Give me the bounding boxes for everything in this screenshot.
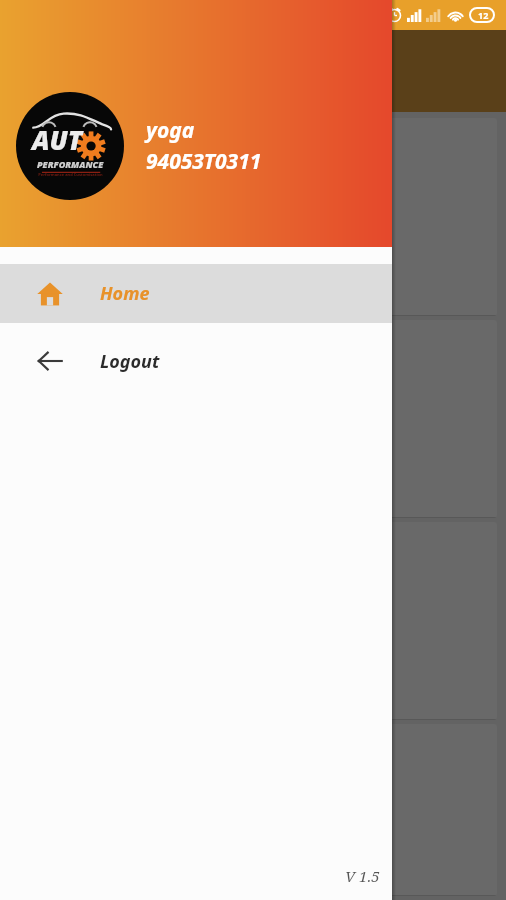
button[interactable]: JOBCARD [8, 320, 497, 518]
staticText: 94053T0311 [146, 147, 262, 176]
button[interactable]: Home [0, 264, 392, 323]
staticText: V 1.5 [345, 866, 380, 886]
button[interactable]: JOBCARD [8, 118, 497, 316]
staticText: Logout [100, 349, 160, 374]
button[interactable]: JOBCARD [8, 522, 497, 720]
staticText: Home [100, 281, 150, 306]
button[interactable]: JOBCARD [8, 724, 497, 896]
staticText: Performance and Customisation [38, 172, 103, 177]
staticText: JOBCARD [26, 222, 115, 251]
staticText: yoga [146, 116, 195, 145]
staticText: AUT [32, 122, 83, 157]
staticText: 2:28 AM [10, 6, 61, 25]
other: Auto Performance logo [16, 92, 124, 200]
button[interactable]: Logout [0, 323, 392, 399]
staticText: 12 [478, 9, 489, 21]
staticText: PERFORMANCE [37, 158, 104, 170]
